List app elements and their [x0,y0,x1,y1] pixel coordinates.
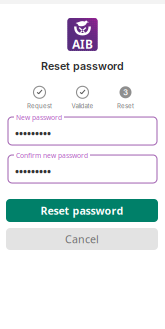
staticText: Confirm new password [16,151,88,160]
staticText: Request [27,102,52,110]
staticText: ••••••••• [15,164,51,178]
staticText: ••••••••• [15,126,51,140]
staticText: Reset password [41,59,124,72]
staticText: Cancel [65,232,99,246]
staticText: New password [16,113,62,122]
button[interactable]: Request [18,86,61,110]
staticText: Reset [117,102,134,110]
staticText: 3 [123,87,128,97]
button[interactable]: Validate [61,86,104,110]
button[interactable]: 3 [104,86,147,110]
staticText: Reset password [40,203,123,218]
staticText: Validate [71,102,93,110]
staticText: AIB [72,36,93,52]
button[interactable]: Cancel [6,228,158,250]
button[interactable]: Reset password [6,199,158,222]
